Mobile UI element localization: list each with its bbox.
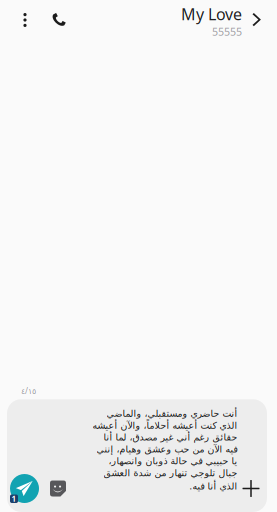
staticText: الذي أنا فيه. [189,480,237,492]
button[interactable]: Send [8,472,41,505]
button[interactable]: Stickers [44,472,72,505]
staticText: فيه الآن من حب وعشق وهيام، إنني [96,444,237,454]
staticText: ٤/١٥ [21,386,36,396]
staticText: 1 [11,493,16,504]
button[interactable]: Attach [238,472,264,505]
staticText: يا حبيبي في حالة ذوبان وانصهار، [108,456,237,466]
staticText: جبال تلوجي تنهار من شدة العشق [103,468,237,478]
button[interactable]: Call [40,0,78,40]
staticText: 55555 [212,24,242,39]
button[interactable]: More options [10,0,40,40]
staticText: حقائق رغم أني غير مصدق، لما أنا [103,432,237,443]
staticText: أنت حاضري ومستقبلي، والماضي [106,408,237,419]
button[interactable]: Back [242,0,272,40]
staticText: الذي كنت أعيشه أحلاماً، والآن أعيشه [92,420,237,431]
staticText: My Love [181,3,242,24]
